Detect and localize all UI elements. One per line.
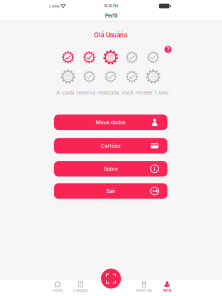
staticText: Sobre [104, 165, 118, 172]
button[interactable]: Cardápio [69, 280, 91, 293]
button[interactable]: Escanear QR Code [101, 269, 121, 289]
button[interactable]: Reservas [133, 280, 155, 293]
button[interactable]: Sair [54, 183, 167, 199]
button[interactable]: Perfil [156, 280, 178, 293]
staticText: A cada reserva realizada você recebe 1 s… [56, 89, 168, 96]
button[interactable]: Sobre [54, 161, 167, 177]
staticText: Perfil [162, 288, 171, 293]
button[interactable]: Meus dados [54, 114, 167, 130]
staticText: ? [166, 46, 169, 53]
staticText: Meus dados [96, 119, 126, 125]
staticText: Cartões [101, 142, 121, 149]
button[interactable]: Ajuda [164, 46, 171, 53]
staticText: Olá Usuário [94, 31, 128, 39]
staticText: Cardápio [73, 288, 88, 293]
staticText: Reservas [136, 288, 152, 293]
staticText: Sair [106, 188, 115, 194]
staticText: Perfil [105, 12, 117, 19]
staticText: Home [53, 288, 63, 293]
button[interactable]: Cartões [54, 138, 167, 154]
button[interactable]: Home [47, 280, 69, 293]
staticText: Carrier [49, 4, 60, 8]
staticText: 10:30 PM [104, 4, 118, 8]
